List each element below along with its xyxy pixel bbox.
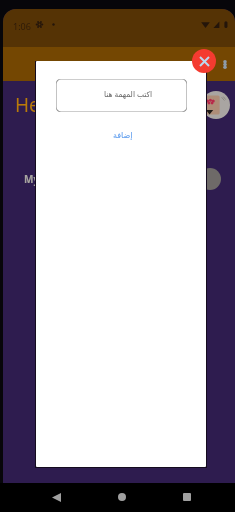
staticText: إضافة [113,131,133,140]
button[interactable]: Home [108,483,136,511]
button[interactable]: Recents [173,483,201,511]
staticText: 1:06 [13,20,31,32]
staticText: Hello [15,92,62,118]
button[interactable]: إضافة [109,127,137,144]
staticText: اكتب المهمة هنا [104,89,153,99]
button[interactable]: اكتب المهمة هنا [56,79,187,112]
button[interactable]: Back [42,483,70,511]
staticText: My tasks [24,172,69,186]
button[interactable]: Toggle theme [199,168,221,190]
button[interactable]: Close [192,49,216,73]
button[interactable]: Profile [202,91,230,119]
button[interactable]: More options [215,54,235,74]
